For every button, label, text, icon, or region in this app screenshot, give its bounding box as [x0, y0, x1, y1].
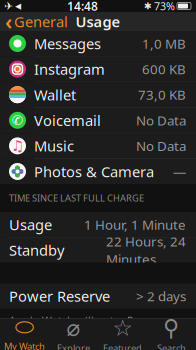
staticText: Music	[34, 136, 74, 156]
staticText: > 2 days	[136, 287, 186, 305]
button[interactable]: ⬭	[0, 319, 49, 350]
staticText: 1 Hour, 1 Minute	[84, 216, 186, 233]
staticText: No Data	[136, 137, 186, 155]
staticText: Power Reserve	[9, 286, 110, 306]
staticText: —	[173, 163, 186, 180]
staticText: Search	[157, 342, 186, 350]
staticText: Apple Watch will enter Power Reserve whe…	[9, 314, 169, 350]
staticText: ⚲	[163, 315, 180, 341]
staticText: Wallet	[34, 85, 76, 104]
staticText: ‹	[5, 7, 12, 36]
staticText: ◀	[15, 1, 21, 11]
staticText: ☆	[112, 315, 132, 341]
staticText: 22 Hours, 24 Minutes	[106, 232, 186, 268]
staticText: Instagram	[34, 59, 105, 79]
staticText: 73%	[154, 0, 175, 13]
staticText: 600 KB	[142, 60, 186, 78]
button[interactable]: ☆	[98, 319, 147, 350]
staticText: ✈	[4, 0, 13, 12]
staticText: ✱	[144, 1, 152, 11]
button[interactable]: Messages	[0, 31, 196, 56]
staticText: 1,0 MB	[142, 35, 186, 52]
staticText: Explore	[57, 342, 90, 350]
button[interactable]: ♫	[0, 133, 196, 158]
staticText: ⬭	[15, 317, 34, 339]
staticText: Photos & Camera	[34, 162, 154, 181]
staticText: Standby	[9, 240, 64, 260]
staticText: My Watch	[4, 340, 45, 350]
button[interactable]: ⚲	[147, 319, 196, 350]
staticText: Usage	[75, 12, 120, 31]
button[interactable]: ⌀	[49, 319, 98, 350]
staticText: 73,0 KB	[138, 86, 186, 103]
staticText: Featured	[103, 342, 142, 350]
button[interactable]: ✆	[0, 108, 196, 133]
staticText: 14:48	[67, 0, 98, 14]
staticText: No Data	[136, 111, 186, 129]
button[interactable]: Instagram	[0, 57, 196, 82]
staticText: Voicemail	[34, 111, 101, 130]
staticText: Messages	[34, 34, 101, 53]
staticText: ⌀	[66, 315, 80, 341]
staticText: Usage	[9, 215, 52, 234]
button[interactable]: ‹	[0, 12, 68, 31]
staticText: ✆	[12, 113, 23, 128]
staticText: TIME SINCE LAST FULL CHARGE	[9, 192, 144, 204]
button[interactable]: Photos & Camera	[0, 159, 196, 184]
staticText: ♫	[11, 138, 24, 154]
button[interactable]: Wallet	[0, 82, 196, 107]
staticText: General	[14, 12, 68, 31]
